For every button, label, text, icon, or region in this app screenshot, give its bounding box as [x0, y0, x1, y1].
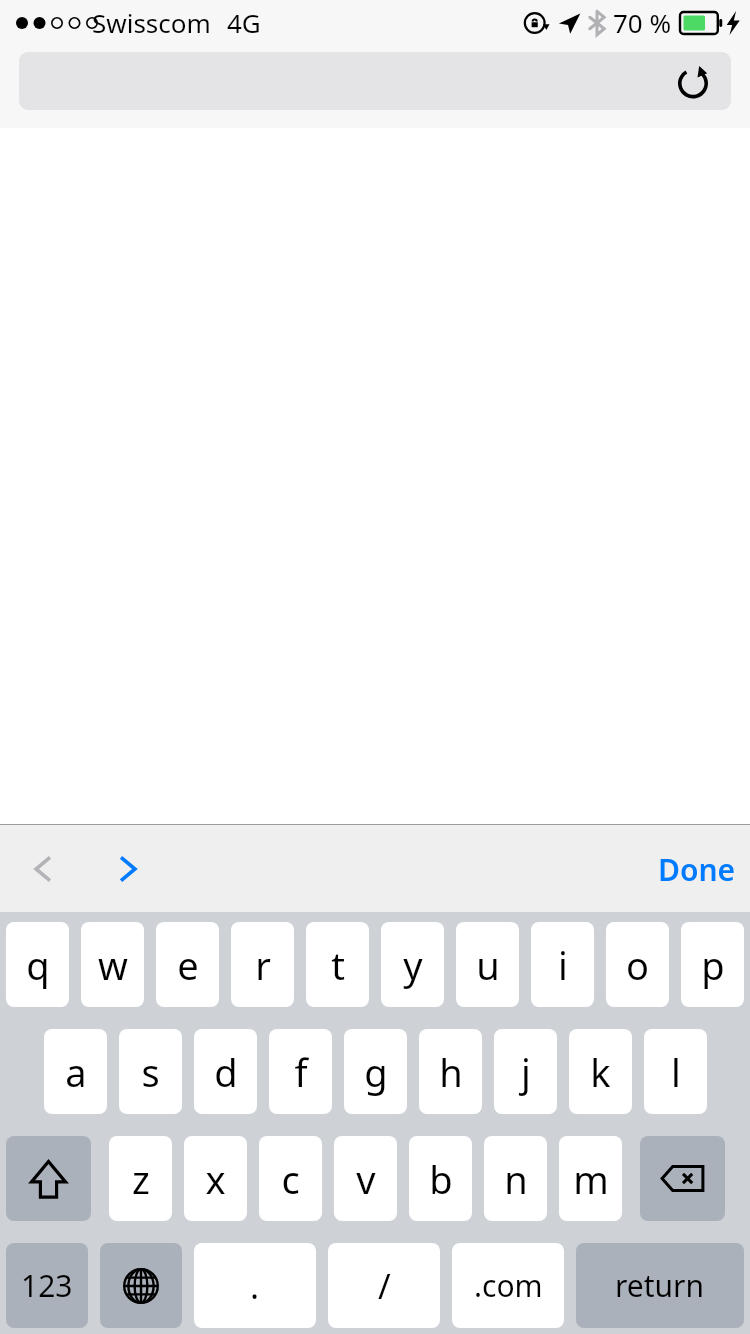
staticText: z [132, 1153, 150, 1205]
button[interactable]: Reload [673, 61, 713, 101]
staticText: x [205, 1153, 226, 1205]
staticText: s [141, 1046, 160, 1098]
button[interactable]: z [109, 1136, 172, 1221]
button[interactable]: g [344, 1029, 407, 1114]
staticText: .com [474, 1265, 543, 1306]
button[interactable]: b [409, 1136, 472, 1221]
staticText: n [504, 1153, 528, 1205]
button[interactable]: l [644, 1029, 707, 1114]
staticText: u [476, 939, 500, 991]
staticText: w [98, 939, 128, 991]
staticText: g [364, 1046, 388, 1098]
staticText: Done [658, 849, 736, 890]
staticText: a [65, 1046, 87, 1098]
staticText: / [378, 1263, 391, 1309]
button[interactable]: m [559, 1136, 622, 1221]
staticText: i [558, 939, 568, 991]
button[interactable]: k [569, 1029, 632, 1114]
button[interactable]: h [419, 1029, 482, 1114]
staticText: t [331, 939, 345, 991]
button[interactable]: t [306, 922, 369, 1007]
button[interactable]: Reload [19, 52, 731, 110]
button[interactable]: y [381, 922, 444, 1007]
staticText: v [356, 1153, 376, 1205]
button[interactable]: v [334, 1136, 397, 1221]
button[interactable]: Previous field [14, 840, 72, 898]
button[interactable]: s [119, 1029, 182, 1114]
button[interactable]: / [328, 1243, 440, 1328]
button[interactable]: p [681, 922, 744, 1007]
button[interactable]: . [194, 1243, 316, 1328]
staticText: b [429, 1153, 453, 1205]
staticText: j [521, 1046, 531, 1098]
button[interactable]: i [531, 922, 594, 1007]
staticText: 123 [21, 1265, 73, 1306]
staticText: k [590, 1046, 611, 1098]
button[interactable]: j [494, 1029, 557, 1114]
button[interactable]: u [456, 922, 519, 1007]
staticText: l [671, 1046, 681, 1098]
staticText: m [573, 1153, 609, 1205]
button[interactable]: f [269, 1029, 332, 1114]
button[interactable]: r [231, 922, 294, 1007]
button[interactable]: return [576, 1243, 744, 1328]
button[interactable]: q [6, 922, 69, 1007]
staticText: . [250, 1263, 260, 1309]
button[interactable]: o [606, 922, 669, 1007]
button[interactable]: x [184, 1136, 247, 1221]
button[interactable]: n [484, 1136, 547, 1221]
staticText: e [177, 939, 199, 991]
button[interactable]: Done [658, 840, 736, 898]
button[interactable]: a [44, 1029, 107, 1114]
button[interactable]: Shift [6, 1136, 91, 1221]
staticText: return [615, 1265, 705, 1306]
button[interactable]: d [194, 1029, 257, 1114]
staticText: o [626, 939, 649, 991]
button[interactable]: 123 [6, 1243, 88, 1328]
staticText: f [294, 1046, 308, 1098]
staticText: y [403, 939, 423, 991]
staticText: p [701, 939, 725, 991]
button[interactable]: Backspace [640, 1136, 725, 1221]
staticText: 4G [227, 5, 261, 40]
button[interactable]: c [259, 1136, 322, 1221]
button[interactable]: e [156, 922, 219, 1007]
button[interactable]: .com [452, 1243, 564, 1328]
staticText: r [255, 939, 271, 991]
button[interactable]: w [81, 922, 144, 1007]
staticText: d [214, 1046, 238, 1098]
staticText: c [281, 1153, 300, 1205]
staticText: q [26, 939, 50, 991]
button[interactable]: Change keyboard [100, 1243, 182, 1328]
button[interactable]: Next field [99, 840, 157, 898]
staticText: 70 % [613, 5, 672, 40]
staticText: h [439, 1046, 463, 1098]
staticText: Swisscom [92, 5, 211, 40]
